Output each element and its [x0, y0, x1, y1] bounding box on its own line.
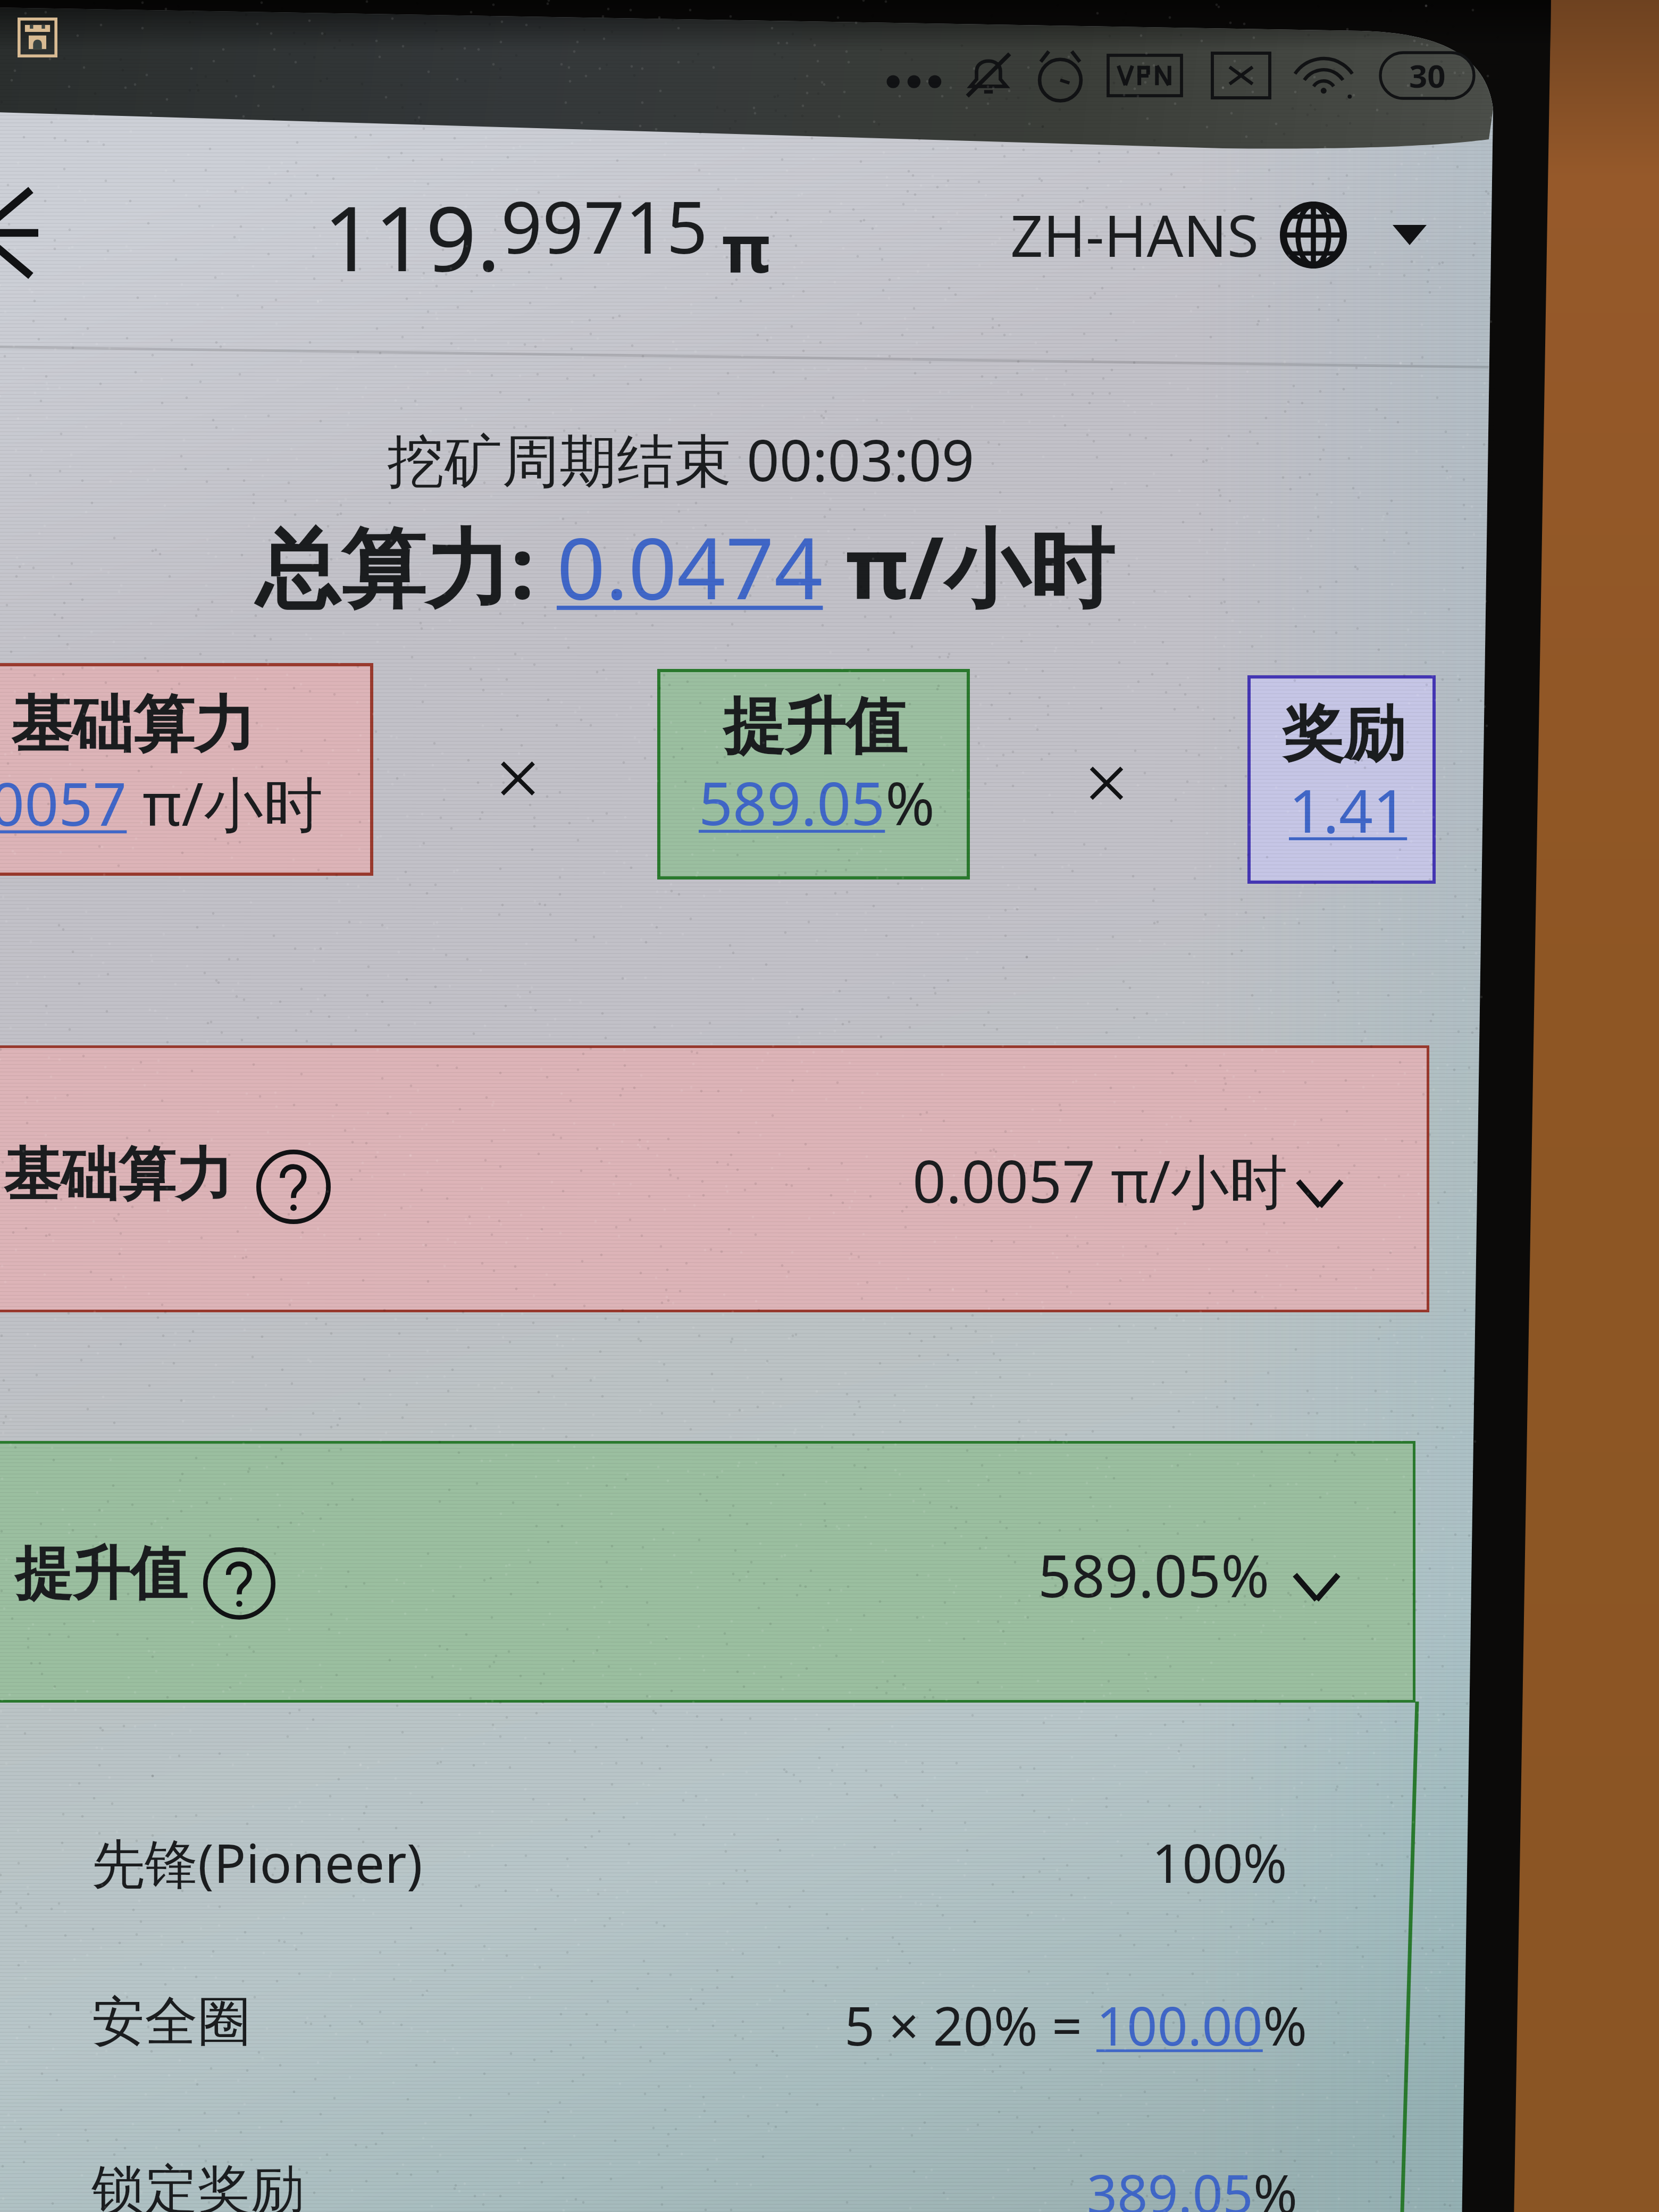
button[interactable]: Select language: ZH-HANS [1010, 196, 1427, 274]
button[interactable]: 奖励 [1247, 675, 1436, 884]
staticText: 先锋(Pioneer) [91, 1826, 423, 1899]
staticText: π/小时 [127, 762, 323, 843]
staticText: 0.0057 π/小时 [912, 1140, 1288, 1220]
staticText: 0.0474 [557, 508, 823, 624]
staticText: 30 [1409, 54, 1446, 97]
button[interactable]: What is base mining rate? [256, 1150, 331, 1224]
staticText: % [1263, 1989, 1308, 2061]
staticText: 锁定奖励 [91, 2157, 304, 2212]
button[interactable]: 基础算力 [0, 1045, 1429, 1312]
staticText: ZH-HANS [1010, 196, 1259, 274]
button[interactable]: 安全圈 [32, 1946, 1393, 2095]
staticText: 挖矿周期结束 00:03:09 [387, 420, 975, 499]
staticText: % [885, 761, 935, 843]
staticText: 100% [1152, 1826, 1287, 1898]
staticText: 5 × 20% = [844, 1989, 1096, 2061]
button[interactable]: What is boost? [203, 1547, 275, 1620]
staticText: 提升值 [723, 688, 907, 765]
staticText: 总算力: [255, 508, 557, 624]
staticText: % [1253, 2157, 1298, 2212]
button[interactable]: 先锋(Pioneer) [32, 1783, 1393, 1932]
staticText: 589.05% [1038, 1535, 1270, 1614]
staticText: 0.0057 [0, 762, 127, 843]
staticText: π/小时 [823, 508, 1115, 624]
staticText: 基础算力 [3, 1139, 233, 1211]
staticText: 1.41 [1289, 769, 1407, 850]
button[interactable]: 提升值 [0, 1441, 1415, 1703]
button[interactable]: 基础算力 [0, 663, 373, 876]
staticText: 389.05 [1087, 2157, 1253, 2212]
staticText: 589.05 [699, 761, 885, 843]
staticText: 基础算力 [11, 686, 255, 764]
staticText: 99715 [501, 177, 708, 275]
staticText: 奖励 [1283, 696, 1405, 773]
button[interactable]: 锁定奖励 [32, 2114, 1393, 2212]
staticText: 安全圈 [91, 1989, 251, 2056]
staticText: π [722, 202, 771, 292]
staticText: 100.00 [1096, 1989, 1263, 2061]
staticText: 119. [323, 175, 501, 297]
staticText: 提升值 [15, 1538, 187, 1610]
button[interactable]: 提升值 [657, 669, 970, 879]
button[interactable]: Back [0, 187, 39, 279]
